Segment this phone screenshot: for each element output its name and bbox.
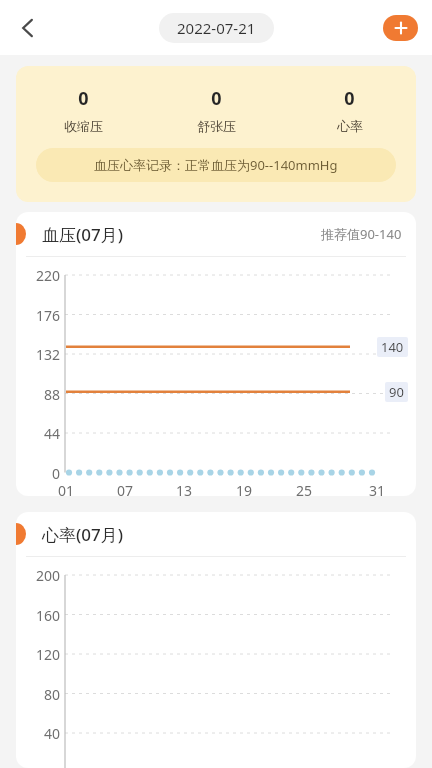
staticText: 220 xyxy=(35,266,60,285)
staticText: 140 xyxy=(381,338,404,356)
staticText: 176 xyxy=(35,306,60,325)
staticText: 90 xyxy=(389,383,404,401)
staticText: 25 xyxy=(296,481,313,496)
staticText: 31 xyxy=(369,481,386,496)
staticText: 血压(07月) xyxy=(42,223,124,246)
staticText: 心率(07月) xyxy=(42,523,124,546)
staticText: 80 xyxy=(43,685,60,704)
staticText: 19 xyxy=(236,481,253,496)
staticText: 120 xyxy=(35,645,60,664)
button[interactable]: 血压(07月) xyxy=(16,212,416,496)
staticText: 160 xyxy=(35,606,60,625)
staticText: 舒张压 xyxy=(197,118,236,134)
staticText: 0 xyxy=(344,86,355,111)
staticText: 收缩压 xyxy=(64,118,103,134)
button[interactable]: 2022-07-21 xyxy=(159,13,274,43)
staticText: 13 xyxy=(176,481,193,496)
button[interactable]: Back xyxy=(6,6,50,50)
staticText: 01 xyxy=(58,481,75,496)
staticText: 心率 xyxy=(337,118,363,134)
staticText: 推荐值90-140 xyxy=(321,225,402,243)
button[interactable]: 心率(07月) xyxy=(16,512,416,768)
staticText: 40 xyxy=(43,724,60,743)
staticText: 0 xyxy=(211,86,222,111)
staticText: 44 xyxy=(43,424,60,443)
staticText: 200 xyxy=(35,566,60,585)
staticText: 0 xyxy=(51,464,60,483)
staticText: 132 xyxy=(35,345,60,364)
staticText: 血压心率记录：正常血压为90--140mmHg xyxy=(94,156,338,174)
button[interactable]: 0 xyxy=(16,66,416,202)
button[interactable]: Add record xyxy=(383,15,418,41)
staticText: 07 xyxy=(117,481,134,496)
staticText: 0 xyxy=(78,86,89,111)
staticText: 88 xyxy=(43,385,60,404)
staticText: 2022-07-21 xyxy=(177,18,256,38)
